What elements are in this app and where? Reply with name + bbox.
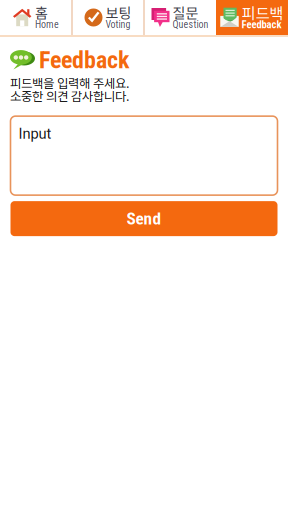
staticText: 피드백 bbox=[241, 1, 283, 24]
staticText: Feedback bbox=[39, 46, 129, 74]
staticText: Input bbox=[18, 125, 51, 142]
staticText: Feedback bbox=[241, 18, 281, 31]
button[interactable]: 홈 bbox=[0, 0, 72, 35]
staticText: 소중한 의견 감사합니다. bbox=[10, 87, 129, 105]
staticText: 피드백을 입력해 주세요. bbox=[10, 74, 129, 92]
staticText: 보팅 bbox=[105, 2, 131, 23]
button[interactable]: Send bbox=[10, 201, 277, 236]
staticText: Home bbox=[35, 19, 59, 30]
staticText: 질문 bbox=[172, 2, 198, 23]
staticText: 홈 bbox=[35, 2, 48, 23]
staticText: Question bbox=[172, 19, 208, 30]
button[interactable]: 피드백 bbox=[216, 0, 288, 35]
button[interactable]: 질문 bbox=[144, 0, 216, 35]
button[interactable]: 보팅 bbox=[72, 0, 144, 35]
staticText: Voting bbox=[105, 19, 130, 30]
staticText: Send bbox=[126, 208, 161, 229]
